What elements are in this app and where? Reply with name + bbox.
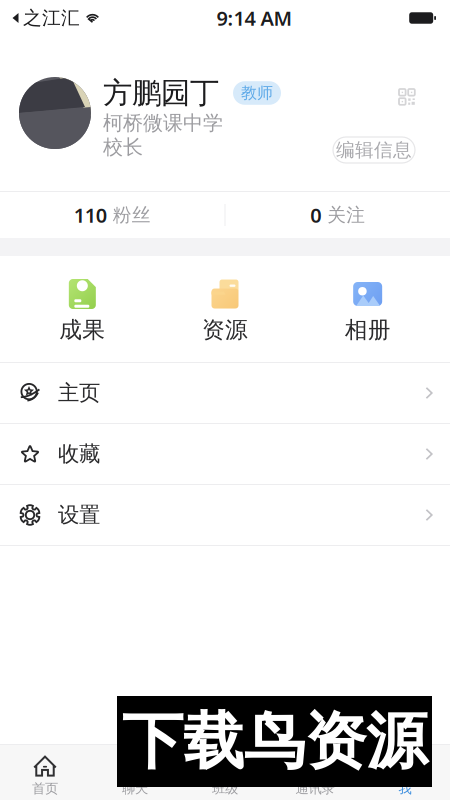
- staticText: 柯桥微课中学: [103, 111, 223, 135]
- staticText: 通讯录: [295, 780, 334, 797]
- staticText: 我: [398, 780, 411, 797]
- button[interactable]: 班级: [180, 745, 270, 800]
- staticText: 相册: [345, 316, 391, 344]
- button[interactable]: 收藏: [0, 424, 450, 484]
- button[interactable]: 编辑信息: [333, 137, 415, 163]
- staticText: 关注: [327, 203, 365, 226]
- staticText: 收藏: [58, 441, 100, 467]
- staticText: 下载鸟资源: [122, 704, 427, 779]
- button[interactable]: 成果: [11, 256, 154, 362]
- button[interactable]: 110: [0, 191, 224, 238]
- staticText: 0: [310, 202, 321, 228]
- staticText: 资源: [202, 316, 248, 344]
- staticText: 设置: [58, 502, 100, 528]
- staticText: 9:14 AM: [217, 5, 293, 31]
- button[interactable]: 相册: [296, 256, 439, 362]
- button[interactable]: 资源: [154, 256, 296, 362]
- staticText: 成果: [59, 316, 105, 344]
- staticText: 方鹏园丁: [103, 75, 219, 111]
- staticText: 编辑信息: [336, 138, 412, 161]
- staticText: 主页: [58, 380, 100, 406]
- button[interactable]: 主页: [0, 363, 450, 423]
- staticText: 粉丝: [113, 203, 151, 226]
- button[interactable]: 通讯录: [270, 745, 360, 800]
- staticText: 班级: [212, 780, 238, 797]
- staticText: 教师: [241, 83, 273, 103]
- staticText: 之江汇: [23, 6, 80, 29]
- button[interactable]: 聊天: [90, 745, 180, 800]
- staticText: 首页: [32, 780, 58, 797]
- button[interactable]: 设置: [0, 485, 450, 545]
- button[interactable]: 0: [225, 191, 450, 238]
- staticText: 聊天: [122, 780, 148, 797]
- button[interactable]: 二维码: [379, 80, 415, 108]
- staticText: 110: [74, 202, 107, 228]
- button[interactable]: 首页: [0, 745, 90, 800]
- button[interactable]: 我: [360, 745, 450, 800]
- staticText: 校长: [103, 135, 143, 159]
